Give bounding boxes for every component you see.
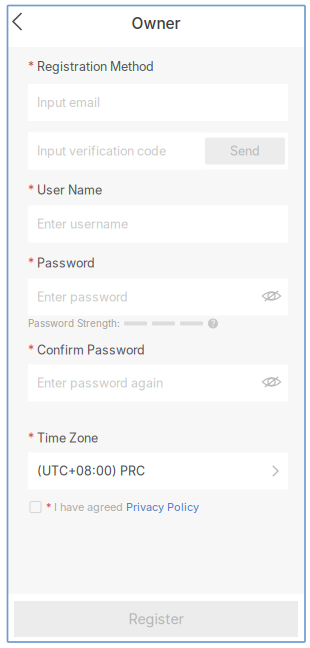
staticText: Registration Method — [37, 59, 154, 74]
staticText: * — [28, 342, 34, 357]
staticText: (UTC+08:00) PRC — [37, 463, 145, 478]
staticText: Enter username — [37, 216, 128, 231]
staticText: * — [28, 430, 34, 445]
staticText: Send — [230, 143, 260, 158]
button[interactable]: Agree to the Privacy Policy — [30, 502, 46, 513]
staticText: * — [28, 59, 34, 74]
staticText: Time Zone — [37, 430, 98, 445]
button[interactable]: Send — [205, 137, 285, 164]
button[interactable]: Show confirm password — [261, 375, 281, 388]
staticText: Enter password — [37, 289, 128, 304]
staticText: Password — [37, 255, 95, 270]
staticText: Owner — [131, 14, 180, 33]
staticText: User Name — [37, 182, 102, 197]
button[interactable]: (UTC+08:00) PRC — [28, 452, 288, 489]
button[interactable]: Register — [14, 601, 298, 637]
button[interactable]: Back — [8, 7, 33, 47]
staticText: Input verification code — [37, 143, 166, 158]
button[interactable]: Privacy Policy — [126, 500, 199, 514]
staticText: Confirm Password — [37, 342, 145, 357]
staticText: ? — [211, 318, 215, 329]
button[interactable]: Show password — [261, 289, 281, 302]
staticText: * — [28, 255, 34, 270]
staticText: Enter password again — [37, 375, 163, 390]
staticText: * — [28, 182, 34, 197]
staticText: Privacy Policy — [126, 500, 199, 514]
staticText: Password Strength: — [28, 317, 120, 329]
staticText: I have agreed — [51, 500, 126, 514]
staticText: * — [46, 500, 51, 514]
staticText: Input email — [37, 95, 100, 110]
staticText: Register — [128, 610, 183, 628]
